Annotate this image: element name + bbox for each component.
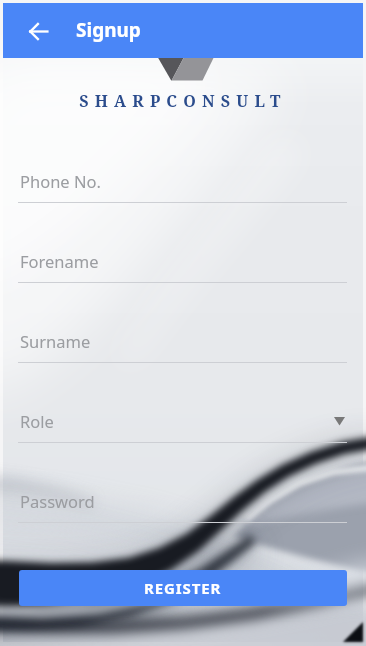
button[interactable]: Surname	[18, 321, 347, 363]
button[interactable]: Password	[18, 481, 347, 523]
button[interactable]: REGISTER	[19, 570, 347, 606]
button[interactable]: Forename	[18, 241, 347, 283]
button[interactable]: Back	[18, 11, 58, 51]
staticText: SHARPCONSULT	[3, 90, 363, 112]
button[interactable]: Phone No.	[18, 161, 347, 203]
staticText: REGISTER	[144, 578, 222, 598]
staticText: Phone No.	[20, 170, 101, 192]
staticText: Surname	[20, 330, 91, 352]
staticText: Signup	[76, 17, 141, 43]
staticText: Role	[20, 410, 54, 432]
staticText: Forename	[20, 250, 99, 272]
staticText: Password	[20, 490, 95, 512]
button[interactable]: Role	[18, 401, 347, 443]
